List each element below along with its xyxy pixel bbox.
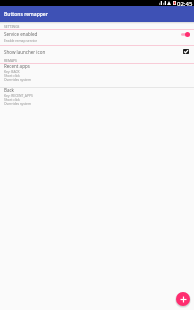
staticText: Key: BACK (4, 69, 20, 73)
staticText: Short click (4, 73, 20, 77)
button[interactable]: Show launcher icon checkbox (181, 47, 190, 56)
staticText: Show launcher icon (4, 49, 46, 55)
staticText: REMAPS (4, 58, 17, 62)
staticText: Enable remap service (4, 38, 38, 42)
staticText: Service enabled (4, 31, 38, 37)
staticText: 02:45 (177, 0, 193, 6)
button[interactable]: Service enabled (0, 30, 194, 45)
staticText: Buttons remapper (4, 11, 48, 18)
button[interactable]: Back (0, 88, 194, 111)
button[interactable]: Service enabled toggle (180, 31, 190, 38)
staticText: Key: RECENT_APPS (4, 93, 33, 97)
staticText: Back (4, 87, 15, 93)
staticText: Short click (4, 97, 20, 101)
staticText: Recent apps (4, 63, 30, 69)
button[interactable]: Recent apps (0, 64, 194, 87)
staticText: SETTINGS (4, 24, 20, 28)
button[interactable]: Add remap (176, 292, 190, 306)
staticText: Overrides system (4, 101, 31, 105)
button[interactable]: Show launcher icon (0, 46, 194, 57)
staticText: Overrides system (4, 77, 31, 81)
